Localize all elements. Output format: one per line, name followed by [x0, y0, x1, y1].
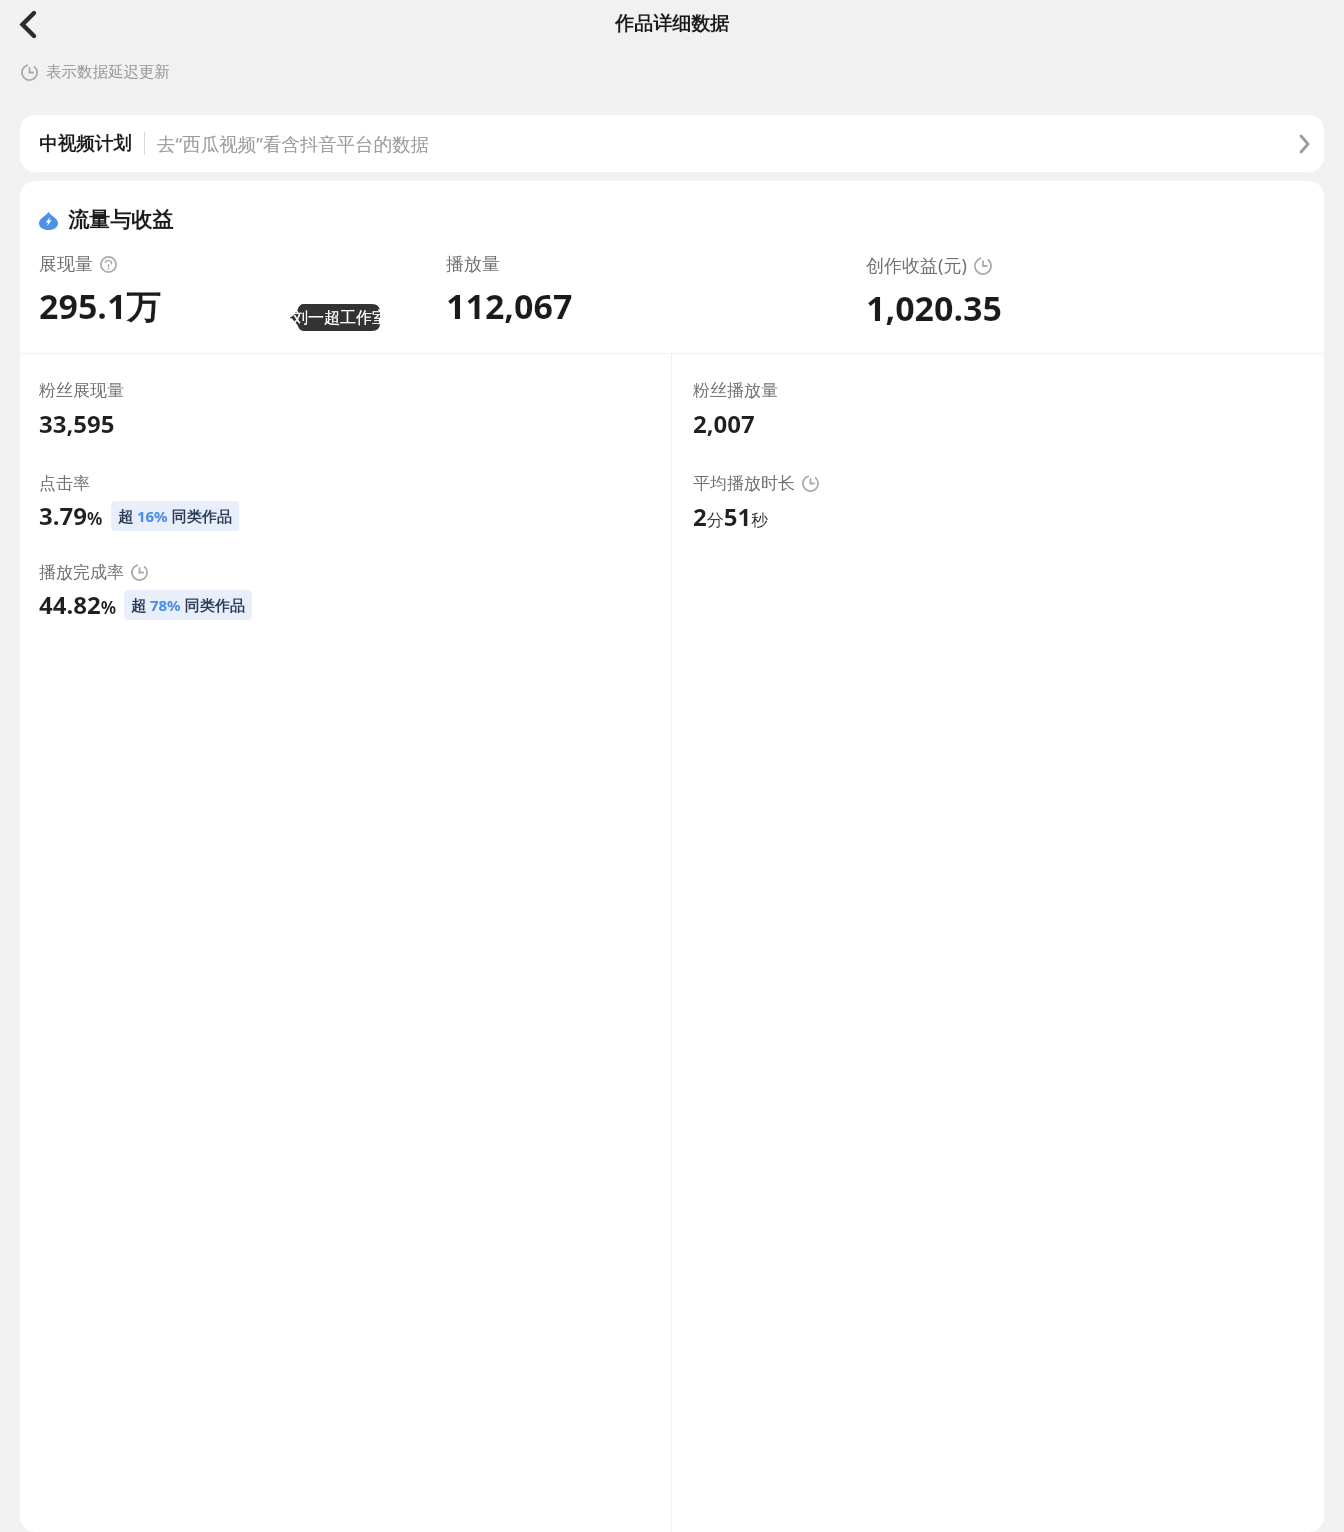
staticText: 创作收益(元) [866, 253, 967, 278]
button[interactable]: 超 16% 同类作品 [111, 501, 239, 531]
staticText: 3.79% [39, 499, 103, 532]
staticText: 中视频计划 [39, 132, 132, 155]
staticText: 表示数据延迟更新 [46, 62, 170, 82]
button[interactable]: 中视频计划 [20, 115, 1324, 172]
staticText: 超 16% 同类作品 [118, 506, 232, 526]
staticText: 点击率 [39, 473, 90, 494]
staticText: 作品详细数据 [615, 12, 729, 36]
staticText: 粉丝播放量 [693, 380, 778, 401]
staticText: 295.1万 [39, 283, 161, 329]
staticText: 1,020.35 [866, 285, 1002, 331]
staticText: 播放量 [446, 253, 500, 276]
staticText: 44.82% [39, 588, 116, 621]
staticText: 112,067 [446, 283, 573, 329]
staticText: 2分51秒 [693, 500, 769, 533]
staticText: 粉丝展现量 [39, 380, 124, 401]
staticText: 2,007 [693, 407, 755, 440]
staticText: 平均播放时长 [693, 473, 795, 494]
staticText: 去“西瓜视频”看含抖音平台的数据 [157, 131, 430, 156]
staticText: 刘一超工作室 [292, 308, 388, 328]
staticText: 展现量 [39, 253, 93, 276]
button[interactable]: Back [6, 3, 48, 45]
staticText: 流量与收益 [68, 207, 173, 233]
staticText: 33,595 [39, 407, 115, 440]
staticText: 播放完成率 [39, 562, 124, 583]
staticText: 超 78% 同类作品 [131, 595, 245, 615]
button[interactable]: 超 78% 同类作品 [124, 590, 252, 620]
